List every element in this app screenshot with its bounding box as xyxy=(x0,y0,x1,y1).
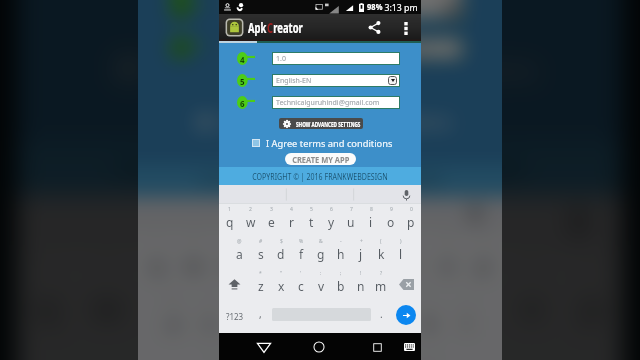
button[interactable]: d xyxy=(167,349,228,360)
button[interactable]: o xyxy=(501,252,562,349)
button[interactable]: j xyxy=(351,236,371,268)
button[interactable]: I Agree terms and conditions xyxy=(117,57,140,80)
button[interactable]: g xyxy=(311,236,331,268)
button[interactable]: d xyxy=(271,236,291,268)
button[interactable]: g xyxy=(300,289,337,347)
button[interactable]: w xyxy=(240,204,261,236)
button[interactable]: c xyxy=(267,347,303,360)
button[interactable]: t xyxy=(257,252,318,349)
button[interactable]: e xyxy=(137,252,197,349)
button[interactable]: f xyxy=(291,236,311,268)
button[interactable]: Backspace xyxy=(391,268,421,300)
button[interactable]: k xyxy=(371,236,391,268)
button[interactable]: Recents xyxy=(367,337,387,357)
button[interactable]: Shift xyxy=(219,268,250,300)
button[interactable]: n xyxy=(375,347,411,360)
button[interactable]: Technicalguruhindi@gmail.com xyxy=(273,97,399,108)
button[interactable]: j xyxy=(411,349,472,360)
button[interactable]: g xyxy=(289,349,350,360)
button[interactable]: o xyxy=(381,204,401,236)
button[interactable]: q xyxy=(17,252,77,349)
button[interactable]: i xyxy=(394,231,430,289)
button[interactable]: Home xyxy=(309,337,329,357)
button[interactable]: h xyxy=(331,236,351,268)
button[interactable]: m xyxy=(411,347,447,360)
button[interactable]: SHOW ADVANCED SETTINGS xyxy=(245,76,396,95)
button[interactable]: s xyxy=(250,236,271,268)
button[interactable]: f xyxy=(263,289,300,347)
button[interactable]: r xyxy=(281,204,301,236)
button[interactable]: i xyxy=(361,204,381,236)
button[interactable]: y xyxy=(321,204,341,236)
button[interactable]: SHOW ADVANCED SETTINGS xyxy=(279,118,363,129)
button[interactable]: h xyxy=(337,289,374,347)
button[interactable]: v xyxy=(303,347,339,360)
button[interactable]: Voice input xyxy=(463,202,488,227)
button[interactable]: c xyxy=(291,268,311,300)
button[interactable]: u xyxy=(341,204,361,236)
button[interactable]: q xyxy=(219,204,240,236)
button[interactable]: u xyxy=(358,231,394,289)
button[interactable]: s xyxy=(191,289,227,347)
button[interactable]: n xyxy=(351,268,371,300)
button[interactable]: Share xyxy=(364,17,385,38)
button[interactable]: b xyxy=(339,347,375,360)
button[interactable]: j xyxy=(374,289,411,347)
button[interactable]: , xyxy=(253,300,267,333)
button[interactable]: b xyxy=(331,268,351,300)
button[interactable]: x xyxy=(231,347,267,360)
button[interactable]: CREATE MY APP xyxy=(285,153,356,165)
button[interactable]: z xyxy=(194,347,231,360)
button[interactable]: t xyxy=(286,231,322,289)
button[interactable]: y xyxy=(322,231,358,289)
button[interactable]: Enter xyxy=(396,305,416,325)
button[interactable]: y xyxy=(318,252,379,349)
button[interactable]: I Agree terms and conditions xyxy=(252,139,260,147)
button[interactable]: e xyxy=(261,204,281,236)
button[interactable]: s xyxy=(106,349,167,360)
button[interactable]: k xyxy=(411,289,448,347)
button[interactable]: h xyxy=(350,349,411,360)
button[interactable]: English-EN xyxy=(273,75,399,86)
button[interactable]: e xyxy=(212,231,249,289)
button[interactable]: k xyxy=(472,349,533,360)
button[interactable]: More options xyxy=(398,20,414,36)
button[interactable]: d xyxy=(227,289,263,347)
button[interactable]: 1.0 xyxy=(273,53,399,64)
button[interactable]: Back xyxy=(254,337,274,357)
button[interactable]: a xyxy=(229,236,250,268)
button[interactable]: u xyxy=(379,252,440,349)
button[interactable]: ?123 xyxy=(223,300,247,333)
button[interactable]: r xyxy=(197,252,257,349)
button[interactable]: r xyxy=(249,231,286,289)
button[interactable]: l xyxy=(391,236,411,268)
button[interactable]: Technicalguruhindi@gmail.com xyxy=(235,39,462,58)
button[interactable]: z xyxy=(250,268,271,300)
button[interactable]: t xyxy=(301,204,321,236)
button[interactable]: Voice input xyxy=(399,188,413,202)
button[interactable]: English-EN xyxy=(235,0,462,18)
button[interactable]: m xyxy=(371,268,391,300)
button[interactable]: p xyxy=(401,204,421,236)
button[interactable]: p xyxy=(562,252,623,349)
button[interactable]: CREATE MY APP xyxy=(215,98,428,134)
button[interactable]: Switch keyboard xyxy=(399,337,419,357)
button[interactable]: v xyxy=(311,268,331,300)
button[interactable]: . xyxy=(374,300,388,333)
button[interactable]: CREATE MY APP xyxy=(257,139,385,161)
